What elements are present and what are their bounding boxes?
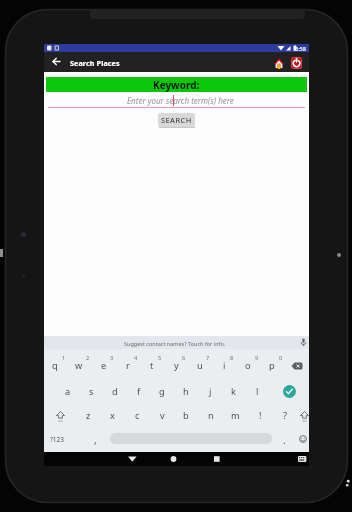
- staticText: 9: [255, 354, 259, 361]
- staticText: 3: [110, 354, 114, 361]
- staticText: o: [245, 359, 251, 372]
- staticText: z: [86, 409, 91, 422]
- button[interactable]: Keyword:: [46, 77, 307, 92]
- button[interactable]: h: [174, 384, 198, 399]
- button[interactable]: z: [76, 408, 100, 423]
- staticText: 4: [134, 354, 138, 361]
- staticText: l: [256, 385, 259, 398]
- staticText: Enter your search term(s) here: [127, 95, 234, 106]
- staticText: .: [283, 433, 286, 447]
- staticText: g: [159, 385, 165, 398]
- staticText: SEARCH: [161, 115, 192, 125]
- staticText: Keyword:: [153, 78, 200, 92]
- button[interactable]: b: [174, 408, 198, 423]
- staticText: 6: [182, 354, 186, 361]
- button[interactable]: [291, 57, 302, 69]
- button[interactable]: k: [221, 384, 245, 399]
- staticText: e: [101, 359, 107, 372]
- staticText: 6:58: [295, 45, 306, 52]
- button[interactable]: q: [43, 358, 67, 373]
- button[interactable]: x: [100, 408, 124, 423]
- button[interactable]: Search Places: [44, 52, 309, 72]
- staticText: s: [89, 385, 94, 398]
- button[interactable]: [56, 411, 65, 422]
- staticText: t: [150, 359, 154, 372]
- button[interactable]: m: [223, 408, 247, 423]
- button[interactable]: j: [198, 384, 222, 399]
- button[interactable]: [300, 411, 309, 422]
- staticText: y: [174, 359, 179, 372]
- button[interactable]: o: [236, 358, 260, 373]
- button[interactable]: [291, 362, 303, 370]
- button[interactable]: [122, 453, 142, 465]
- button[interactable]: u: [188, 358, 212, 373]
- button[interactable]: [299, 435, 307, 443]
- staticText: d: [112, 385, 118, 398]
- staticText: h: [183, 385, 189, 398]
- staticText: b: [183, 409, 189, 422]
- staticText: f: [137, 385, 141, 398]
- button[interactable]: t: [140, 358, 164, 373]
- staticText: x: [110, 409, 115, 422]
- button[interactable]: [206, 453, 226, 465]
- staticText: 8: [230, 354, 234, 361]
- button[interactable]: SEARCH: [158, 113, 195, 127]
- staticText: ?: [283, 409, 287, 422]
- staticText: w: [75, 359, 83, 372]
- button[interactable]: s: [79, 384, 103, 399]
- staticText: 2: [86, 354, 90, 361]
- button[interactable]: l: [245, 384, 269, 399]
- staticText: 1: [62, 354, 66, 361]
- button[interactable]: ?: [273, 408, 297, 423]
- staticText: 5: [158, 354, 162, 361]
- staticText: m: [231, 409, 240, 422]
- button[interactable]: a: [56, 384, 80, 399]
- button[interactable]: n: [199, 408, 223, 423]
- button[interactable]: e: [92, 358, 116, 373]
- button[interactable]: y: [164, 358, 188, 373]
- staticText: 7: [206, 354, 210, 361]
- staticText: k: [231, 385, 236, 398]
- staticText: p: [269, 359, 275, 372]
- button[interactable]: [44, 336, 309, 349]
- button[interactable]: w: [67, 358, 91, 373]
- button[interactable]: [283, 385, 296, 398]
- staticText: u: [197, 359, 203, 372]
- staticText: i: [223, 359, 226, 372]
- staticText: a: [65, 385, 71, 398]
- staticText: !: [259, 409, 262, 422]
- staticText: Search Places: [70, 58, 120, 68]
- staticText: c: [135, 409, 140, 422]
- button[interactable]: c: [125, 408, 149, 423]
- button[interactable]: v: [150, 408, 174, 423]
- button[interactable]: d: [103, 384, 127, 399]
- staticText: ,: [94, 433, 97, 447]
- staticText: q: [52, 359, 58, 372]
- button[interactable]: i: [212, 358, 236, 373]
- button[interactable]: p: [260, 358, 284, 373]
- button[interactable]: !: [248, 408, 272, 423]
- staticText: r: [126, 359, 130, 372]
- button[interactable]: g: [150, 384, 174, 399]
- button[interactable]: [164, 453, 184, 465]
- staticText: j: [209, 385, 212, 398]
- button[interactable]: r: [116, 358, 140, 373]
- staticText: Suggest contact names? Touch for info.: [124, 340, 226, 347]
- staticText: ?123: [50, 435, 64, 444]
- staticText: 0: [279, 354, 283, 361]
- button[interactable]: [274, 58, 284, 69]
- button[interactable]: f: [127, 384, 151, 399]
- staticText: v: [160, 409, 165, 422]
- staticText: n: [208, 409, 214, 422]
